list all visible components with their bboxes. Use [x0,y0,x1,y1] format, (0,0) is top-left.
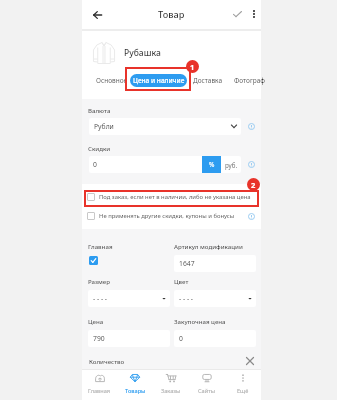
staticText: Товар [158,8,185,21]
staticText: Цвет [174,277,189,285]
staticText: Доставка [193,76,223,85]
staticText: Под заказ, если нет в наличии, либо не у… [99,193,251,201]
button[interactable]: Доставка [188,71,228,90]
button[interactable]: - - - - [174,290,256,307]
staticText: Количество [89,357,125,365]
button[interactable]: Главная [89,256,98,265]
button[interactable]: Ещё [225,370,261,400]
button[interactable]: Close [244,355,256,367]
staticText: 0 [179,334,252,343]
button[interactable]: Сайты [189,370,225,400]
button[interactable]: Товары [117,370,153,400]
staticText: Артикул модификации [174,242,243,250]
button[interactable]: Не применять другие скидки, купоны и бон… [87,208,257,224]
button[interactable]: Фотограф [229,71,271,90]
staticText: 1647 [179,259,252,268]
staticText: Фотограф [234,76,266,85]
staticText: Цена и наличие [133,76,185,85]
staticText: Не применять другие скидки, купоны и бон… [99,212,246,220]
button[interactable]: Help [246,211,257,222]
staticText: Сайты [198,387,216,395]
staticText: Заказы [161,387,181,395]
staticText: руб. [225,161,238,169]
button[interactable]: Save [227,0,247,30]
staticText: Цена [88,317,104,325]
staticText: Валюта [88,106,111,114]
button[interactable]: - - - - [88,290,170,307]
button[interactable]: Основное [91,71,133,90]
staticText: 2 [251,180,256,190]
staticText: Рубашка [124,47,161,59]
staticText: Закупочная цена [174,317,226,325]
button[interactable]: More options [246,0,261,30]
staticText: 790 [93,334,166,343]
button[interactable]: Под заказ, если нет в наличии, либо не у… [87,189,261,205]
button[interactable]: Главная [82,370,117,400]
staticText: 0 [93,160,97,169]
button[interactable]: 0 [174,330,256,347]
staticText: - - - - [93,294,162,303]
staticText: Размер [88,277,111,285]
button[interactable]: Заказы [153,370,189,400]
button[interactable]: Цена и наличие [130,74,187,87]
staticText: Главная [88,242,113,250]
staticText: % [209,160,215,169]
staticText: Основное [96,76,128,85]
staticText: Товары [125,387,146,395]
button[interactable]: руб. [221,156,241,173]
button[interactable]: % [202,156,221,173]
button[interactable]: Back [85,3,109,27]
staticText: - - - - [179,294,248,303]
staticText: Рубли [94,122,231,131]
button[interactable]: Help [246,159,257,170]
staticText: Скидки [88,144,111,152]
staticText: Главная [88,387,111,395]
staticText: Ещё [237,387,249,395]
button[interactable]: Рубли [89,118,241,135]
button[interactable]: 790 [88,330,170,347]
button[interactable]: Help [246,121,257,132]
button[interactable]: 1647 [174,255,256,272]
staticText: 1 [190,62,195,72]
